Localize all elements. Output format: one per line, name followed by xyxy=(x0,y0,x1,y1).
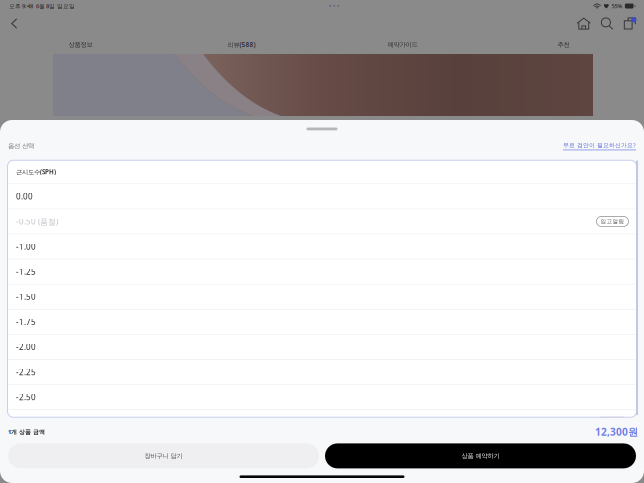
button[interactable]: 근시도수(SPH) xyxy=(7,160,636,183)
button[interactable]: -1.00 xyxy=(7,234,636,259)
staticText: 무료 검안이 필요하신가요? xyxy=(563,141,636,149)
button[interactable]: Shopping bag xyxy=(622,17,638,30)
button[interactable]: -1.25 xyxy=(7,259,636,284)
button[interactable]: -2.50 xyxy=(7,385,636,409)
staticText: 근시도수(SPH) xyxy=(16,168,56,176)
button[interactable]: -1.75 xyxy=(7,310,636,334)
staticText: 예약가이드 xyxy=(387,41,417,48)
staticText: 리뷰(588) xyxy=(227,40,255,49)
staticText: -2.50 xyxy=(16,392,36,402)
button[interactable]: 0.00 xyxy=(7,184,636,209)
button[interactable]: 추천 xyxy=(483,35,644,54)
staticText: 장바구니 담기 xyxy=(144,452,182,460)
button[interactable]: Home xyxy=(573,17,594,30)
staticText: -2.00 xyxy=(16,342,36,352)
staticText: • • • xyxy=(329,2,339,10)
button[interactable]: 상품정보 xyxy=(0,35,161,54)
staticText: 1개 상품 금액 xyxy=(8,428,45,436)
staticText: -2.75 xyxy=(16,417,36,428)
staticText: 오후 9:48 6월 8일 일요일 xyxy=(9,2,75,10)
button[interactable]: -2.25 xyxy=(7,360,636,384)
button[interactable]: Search xyxy=(597,17,616,30)
staticText: 0.00 xyxy=(16,191,33,202)
staticText: 55% xyxy=(611,2,622,10)
button[interactable]: 장바구니 담기 xyxy=(8,443,319,468)
staticText: -1.00 xyxy=(16,241,36,252)
staticText: -0.50 (품절) xyxy=(16,216,58,227)
staticText: -1.25 xyxy=(16,266,36,277)
button[interactable]: Back xyxy=(6,15,22,32)
button[interactable]: -2.75 xyxy=(7,410,636,434)
staticText: -2.25 xyxy=(16,367,36,377)
staticText: 추천 xyxy=(557,41,569,48)
staticText: 입고알림 xyxy=(600,218,624,225)
button[interactable]: 무료 검안이 필요하신가요? xyxy=(563,141,636,150)
button[interactable]: 예약가이드 xyxy=(322,35,483,54)
staticText: 12,300원 xyxy=(595,425,638,438)
staticText: -1.50 xyxy=(16,291,36,302)
button[interactable]: 상품 예약하기 xyxy=(325,443,636,468)
button[interactable]: 리뷰(588) xyxy=(161,35,322,54)
staticText: 상품 예약하기 xyxy=(461,452,499,460)
staticText: 상품정보 xyxy=(68,41,92,48)
button[interactable]: -2.00 xyxy=(7,335,636,359)
staticText: 옵션 선택 xyxy=(8,142,34,150)
button[interactable]: -1.50 xyxy=(7,285,636,309)
button[interactable]: -0.50 (품절) xyxy=(7,209,636,234)
staticText: -1.75 xyxy=(16,317,36,327)
